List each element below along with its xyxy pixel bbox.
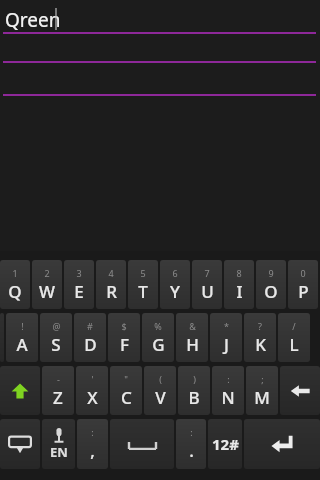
staticText: 6 (172, 267, 178, 279)
button[interactable]: : (77, 419, 108, 469)
staticText: E (74, 280, 84, 303)
button[interactable]: $ (108, 313, 140, 362)
staticText: ) (193, 373, 196, 385)
staticText: : (91, 426, 94, 438)
staticText: EN (50, 443, 68, 461)
staticText: . (189, 439, 194, 462)
button[interactable]: / (278, 313, 310, 362)
staticText: ; (261, 373, 264, 385)
button[interactable]: @ (40, 313, 72, 362)
staticText: 4 (108, 267, 114, 279)
staticText: 1 (12, 267, 18, 279)
staticText: N (221, 386, 235, 409)
staticText: 3 (76, 267, 82, 279)
button[interactable]: Backspace (280, 366, 320, 415)
button[interactable]: ? (244, 313, 276, 362)
button[interactable]: Space (110, 419, 174, 469)
button[interactable]: Enter (244, 419, 320, 469)
button[interactable]: - (42, 366, 74, 415)
staticText: - (57, 373, 60, 385)
button[interactable]: 5 (128, 260, 158, 309)
button[interactable]: ) (178, 366, 210, 415)
staticText: U (201, 280, 214, 303)
button[interactable]: 4 (96, 260, 126, 309)
staticText: " (124, 373, 128, 385)
staticText: I (236, 280, 243, 303)
button[interactable]: ; (246, 366, 278, 415)
staticText: & (189, 320, 196, 332)
staticText: * (224, 320, 229, 332)
button[interactable]: 0 (288, 260, 318, 309)
staticText: L (289, 333, 299, 356)
button[interactable]: ! (6, 313, 38, 362)
button[interactable]: Switch keyboard (0, 419, 40, 469)
staticText: 7 (204, 267, 210, 279)
staticText: V (155, 386, 166, 409)
button[interactable]: % (142, 313, 174, 362)
staticText: 5 (140, 267, 146, 279)
staticText: Q (8, 280, 22, 303)
staticText: , (90, 439, 95, 462)
staticText: 0 (300, 267, 306, 279)
staticText: # (87, 320, 93, 332)
staticText: @ (52, 320, 61, 332)
button[interactable]: 6 (160, 260, 190, 309)
staticText: K (255, 333, 266, 356)
staticText: G (152, 333, 165, 356)
staticText: : (227, 373, 230, 385)
button[interactable]: ' (76, 366, 108, 415)
button[interactable]: 8 (224, 260, 254, 309)
button[interactable]: : (212, 366, 244, 415)
staticText: M (254, 386, 270, 409)
staticText: 2 (44, 267, 50, 279)
staticText: A (16, 333, 28, 356)
staticText: O (264, 280, 278, 303)
button[interactable]: Shift (0, 366, 40, 415)
staticText: / (292, 320, 296, 332)
staticText: R (106, 280, 117, 303)
staticText: 9 (268, 267, 274, 279)
staticText: H (186, 333, 199, 356)
staticText: C (121, 386, 132, 409)
staticText: Z (53, 386, 63, 409)
staticText: % (154, 320, 162, 332)
staticText: B (188, 386, 200, 409)
staticText: T (138, 280, 148, 303)
button[interactable]: : (176, 419, 206, 469)
button[interactable]: 2 (32, 260, 62, 309)
staticText: ' (91, 373, 94, 385)
button[interactable]: 1 (0, 260, 30, 309)
staticText: ! (21, 320, 24, 332)
staticText: 12# (212, 434, 239, 454)
staticText: D (84, 333, 97, 356)
button[interactable]: * (210, 313, 242, 362)
button[interactable]: Voice input English (42, 419, 75, 469)
staticText: F (120, 333, 129, 356)
button[interactable]: 7 (192, 260, 222, 309)
staticText: 8 (236, 267, 242, 279)
button[interactable]: # (74, 313, 106, 362)
staticText: ( (159, 373, 162, 385)
staticText: $ (121, 320, 127, 332)
staticText: P (298, 280, 309, 303)
staticText: Y (170, 280, 180, 303)
staticText: : (190, 426, 193, 438)
button[interactable]: 3 (64, 260, 94, 309)
staticText: Qreen (5, 7, 61, 33)
button[interactable]: ( (144, 366, 176, 415)
button[interactable]: " (110, 366, 142, 415)
button[interactable]: 9 (256, 260, 286, 309)
button[interactable]: & (176, 313, 208, 362)
staticText: W (39, 280, 55, 303)
button[interactable] (0, 313, 4, 362)
staticText: X (87, 386, 98, 409)
staticText: ? (258, 320, 262, 332)
staticText: J (224, 333, 229, 356)
staticText: S (51, 333, 61, 356)
button[interactable]: 12# (208, 419, 242, 469)
